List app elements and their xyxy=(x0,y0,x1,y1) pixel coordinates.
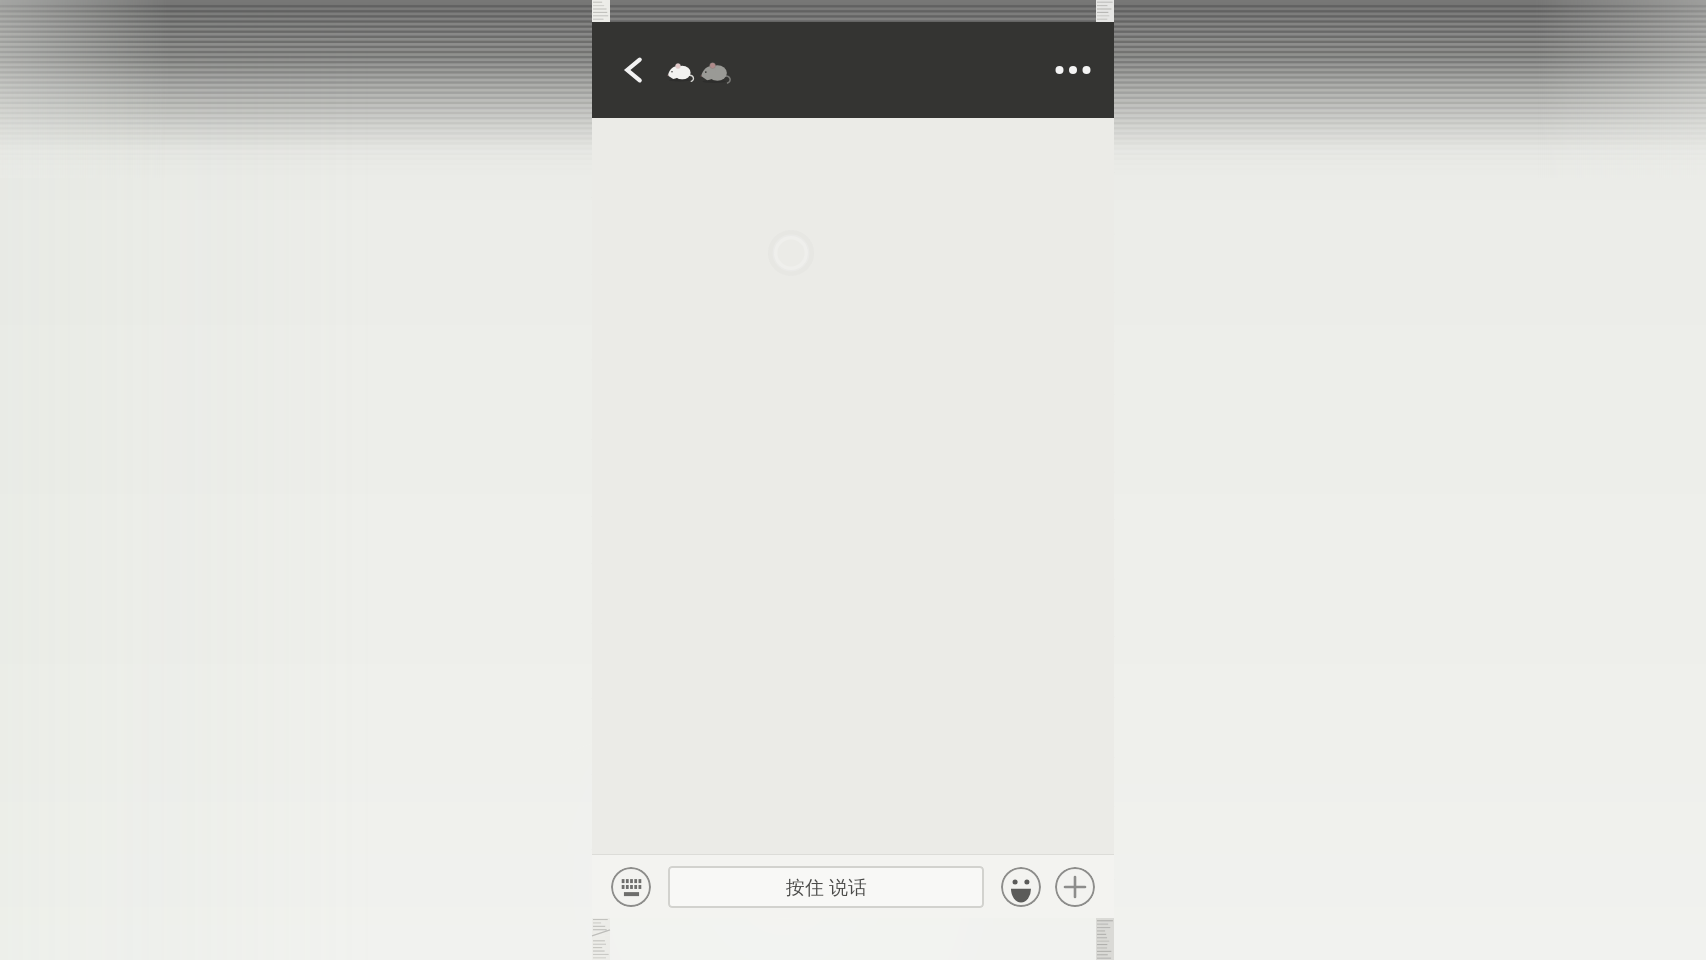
staticText: 按住 说话 xyxy=(786,874,867,900)
button[interactable]: 按住 说话 xyxy=(668,866,984,908)
button[interactable]: More functions xyxy=(1055,867,1095,907)
button[interactable]: Emoji xyxy=(1001,867,1041,907)
button[interactable]: More options xyxy=(1044,41,1102,99)
button[interactable]: Switch to keyboard xyxy=(611,867,651,907)
button[interactable]: Back xyxy=(606,42,662,98)
button[interactable] xyxy=(666,40,733,100)
